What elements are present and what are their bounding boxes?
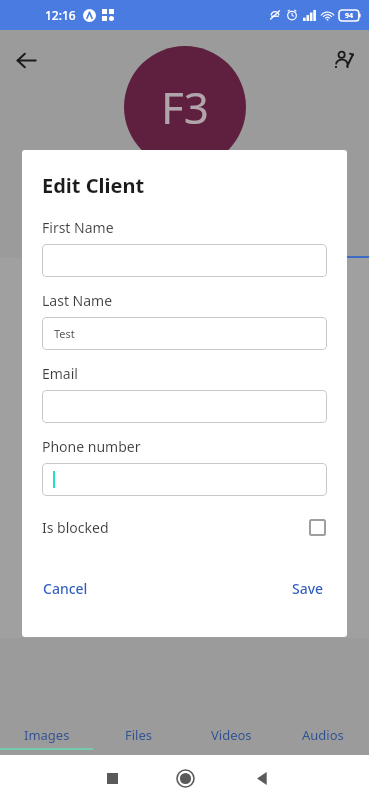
staticText: First Name: [42, 218, 114, 237]
button[interactable]: Audios: [277, 720, 369, 750]
button[interactable]: Cancel: [32, 573, 99, 604]
button[interactable]: Is blocked: [22, 510, 347, 544]
button[interactable]: Recents: [95, 761, 129, 795]
button[interactable]: Home: [168, 761, 202, 795]
button[interactable]: Images: [0, 720, 93, 750]
staticText: 12:16: [45, 7, 76, 23]
button[interactable]: Videos: [185, 720, 277, 750]
staticText: Audios: [302, 726, 344, 744]
staticText: Phone number: [42, 437, 141, 456]
staticText: Test: [54, 326, 75, 341]
button[interactable]: Files: [93, 720, 185, 750]
staticText: Last Name: [42, 291, 113, 310]
button[interactable]: Back: [245, 761, 279, 795]
button[interactable]: Save: [281, 573, 335, 604]
staticText: Images: [24, 726, 70, 744]
staticText: F3: [161, 77, 210, 137]
button[interactable]: Test: [42, 317, 327, 350]
staticText: Is blocked: [42, 518, 109, 537]
button[interactable]: [42, 244, 327, 277]
staticText: Edit Client: [42, 172, 145, 199]
button[interactable]: [42, 463, 327, 496]
button[interactable]: Edit client: [327, 43, 361, 77]
staticText: 94: [345, 11, 354, 21]
staticText: Cancel: [43, 579, 88, 598]
button[interactable]: Back: [9, 43, 43, 77]
staticText: Files: [125, 726, 153, 744]
button[interactable]: [42, 390, 327, 423]
staticText: Videos: [211, 726, 252, 744]
staticText: Save: [292, 579, 324, 598]
staticText: Email: [42, 364, 78, 383]
